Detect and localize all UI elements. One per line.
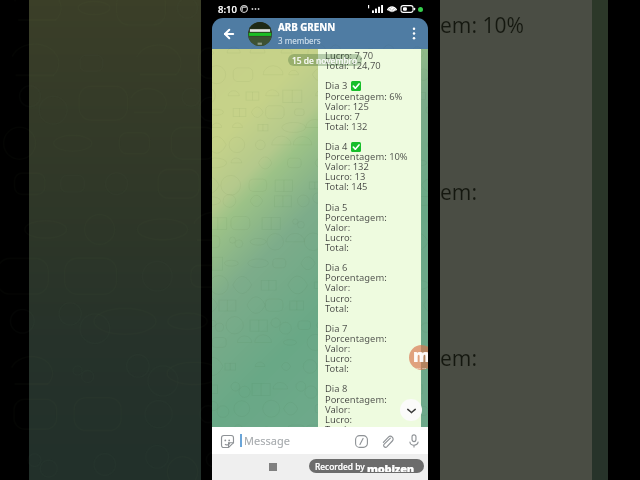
button[interactable]: Commands [352,432,370,450]
staticText: Total: [325,423,349,427]
staticText: Valor: [325,221,351,234]
staticText: Valor: [325,342,351,355]
staticText: Porcentagem: [325,211,387,224]
staticText: Valor: 132 [325,160,369,173]
staticText: Valor: 125 [325,100,369,113]
staticText: Total: 124,70 [325,59,381,72]
staticText: 13:37 [416,367,427,369]
staticText: Lucro: [325,231,353,244]
staticText: Dia 3 [325,79,348,92]
button[interactable]: 15 de novembro [288,54,362,66]
staticText: Lucro: 7 [325,110,360,123]
staticText: Valor: [325,281,351,294]
staticText: m [413,345,428,367]
staticText: Dia 7 [325,322,348,335]
staticText: Total: [325,302,349,315]
button[interactable]: Scroll to bottom [400,399,422,421]
staticText: ARB GRENN [278,21,336,34]
staticText: Dia 4 [325,140,348,153]
staticText: 3 members [278,35,321,46]
staticText: Total: 145 [325,180,368,193]
staticText: Total: [325,362,349,375]
staticText: Porcentagem: 10% [325,150,408,163]
button[interactable]: Voice message [405,432,423,450]
staticText: em: [440,178,478,207]
button[interactable]: Attach [378,432,396,450]
staticText: Dia 6 [325,261,348,274]
staticText: Dia 8 [325,382,348,395]
button[interactable]: ARB GRENN [278,18,403,49]
staticText: Lucro: 13 [325,170,366,183]
staticText: Dia 5 [325,201,348,214]
button[interactable]: More options [403,18,425,49]
staticText: Valor: [325,403,351,416]
staticText: Porcentagem: [325,271,387,284]
staticText: Total: [325,241,349,254]
staticText: Recorded by [315,461,365,472]
staticText: Lucro: 7,70 [325,49,374,62]
staticText: 15 de novembro [292,55,358,66]
button[interactable]: Emoji [218,432,236,450]
staticText: Porcentagem: [325,332,387,345]
staticText: Message [244,433,290,448]
staticText: em: [440,344,478,373]
staticText: 8:10 [218,3,237,16]
staticText: em: 10% [440,11,525,40]
staticText: Lucro: [325,352,353,365]
staticText: mobizen [367,461,414,472]
staticText: Porcentagem: 6% [325,90,403,103]
staticText: Lucro: [325,413,353,426]
staticText: Total: 132 [325,120,368,133]
button[interactable]: Back [212,18,246,49]
staticText: Lucro: [325,292,353,305]
button[interactable]: Lucro: 7,70 [318,49,421,427]
staticText: Porcentagem: [325,393,387,406]
